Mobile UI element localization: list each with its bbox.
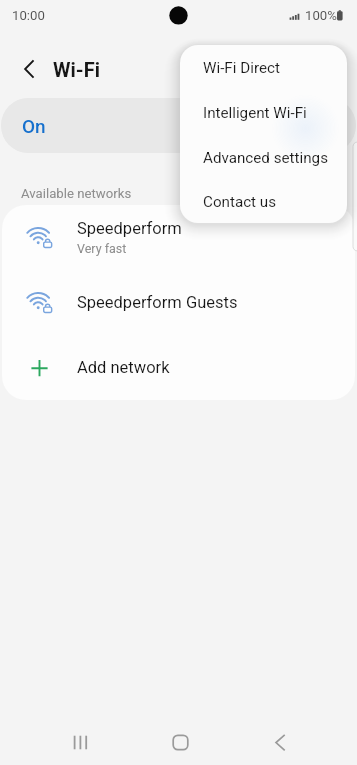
button[interactable]: Back xyxy=(256,718,304,765)
button[interactable]: Advanced settings xyxy=(180,135,347,180)
staticText: Available networks xyxy=(21,186,132,201)
staticText: Very fast xyxy=(77,241,127,256)
button[interactable]: Add network xyxy=(2,335,355,400)
button[interactable]: On xyxy=(1,98,356,153)
staticText: Wi-Fi xyxy=(53,58,100,81)
staticText: Speedperform Guests xyxy=(77,293,238,312)
staticText: Contact us xyxy=(203,193,277,211)
staticText: Advanced settings xyxy=(203,149,328,167)
staticText: On xyxy=(22,115,46,137)
staticText: Add network xyxy=(77,358,170,377)
staticText: 10:00 xyxy=(12,8,45,23)
button[interactable]: Intelligent Wi-Fi xyxy=(180,90,347,135)
button[interactable]: Wi-Fi Direct xyxy=(180,45,347,90)
button[interactable]: Recent apps xyxy=(56,718,104,765)
button[interactable]: Speedperform Guests xyxy=(2,270,355,335)
button[interactable]: Home xyxy=(156,718,204,765)
staticText: Speedperform xyxy=(77,219,182,238)
staticText: Intelligent Wi-Fi xyxy=(203,104,307,122)
staticText: 100% xyxy=(305,8,337,23)
staticText: Wi-Fi Direct xyxy=(203,59,280,77)
button[interactable]: Speedperform xyxy=(2,205,355,270)
button[interactable]: Navigate up xyxy=(13,53,45,85)
button[interactable]: Contact us xyxy=(180,180,347,223)
